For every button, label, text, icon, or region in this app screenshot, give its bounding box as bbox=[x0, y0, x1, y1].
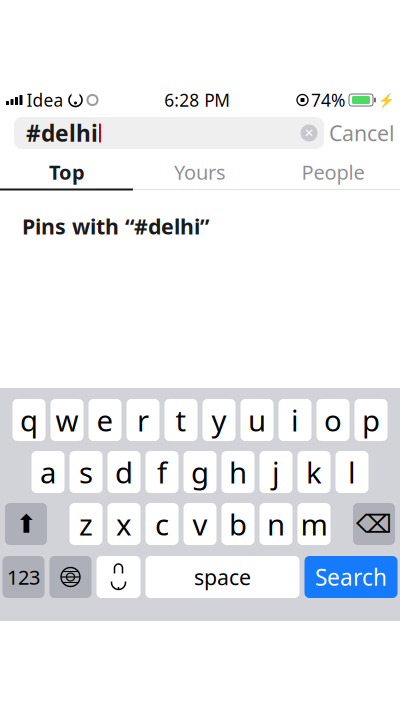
button[interactable]: Search bbox=[304, 556, 397, 598]
button[interactable]: space bbox=[145, 556, 299, 598]
button[interactable]: w bbox=[50, 399, 83, 441]
button[interactable]: t bbox=[164, 399, 197, 441]
staticText: ✕ bbox=[304, 126, 314, 140]
staticText: Search bbox=[315, 562, 387, 592]
staticText: d bbox=[115, 452, 133, 491]
button[interactable]: q bbox=[12, 399, 45, 441]
button[interactable]: Yours bbox=[133, 155, 266, 188]
staticText: ⌫ bbox=[356, 510, 392, 538]
staticText: z bbox=[79, 504, 93, 543]
staticText: j bbox=[272, 452, 280, 491]
staticText: v bbox=[192, 504, 207, 543]
staticText: p bbox=[362, 400, 380, 439]
button[interactable]: k bbox=[297, 451, 330, 493]
staticText: i bbox=[291, 400, 299, 439]
staticText: l bbox=[348, 452, 356, 491]
staticText: k bbox=[306, 452, 322, 491]
staticText: e bbox=[96, 400, 113, 439]
button[interactable]: Dictate bbox=[96, 556, 140, 598]
button[interactable]: Clear text bbox=[294, 117, 324, 149]
button[interactable]: n bbox=[259, 503, 292, 545]
button[interactable]: People bbox=[266, 155, 399, 188]
button[interactable]: Shift bbox=[5, 503, 47, 545]
staticText: n bbox=[267, 504, 285, 543]
button[interactable]: f bbox=[145, 451, 178, 493]
staticText: Top bbox=[49, 159, 85, 185]
button[interactable]: e bbox=[88, 399, 121, 441]
staticText: ⬆ bbox=[15, 510, 36, 538]
staticText: t bbox=[175, 400, 186, 439]
staticText: Pins with “#delhi” bbox=[22, 212, 209, 240]
button[interactable]: u bbox=[240, 399, 273, 441]
staticText: b bbox=[229, 504, 247, 543]
staticText: 123 bbox=[7, 564, 40, 590]
staticText: 6:28 PM bbox=[164, 88, 230, 111]
staticText: Cancel bbox=[329, 119, 395, 147]
button[interactable]: b bbox=[221, 503, 254, 545]
staticText: s bbox=[79, 452, 93, 491]
button[interactable]: g bbox=[183, 451, 216, 493]
button[interactable]: c bbox=[145, 503, 178, 545]
button[interactable]: y bbox=[202, 399, 235, 441]
button[interactable]: j bbox=[259, 451, 292, 493]
button[interactable]: Cancel bbox=[324, 116, 400, 150]
staticText: f bbox=[157, 452, 167, 491]
button[interactable]: x bbox=[107, 503, 140, 545]
staticText: x bbox=[116, 504, 132, 543]
button[interactable]: r bbox=[126, 399, 159, 441]
button[interactable]: Delete bbox=[353, 503, 395, 545]
staticText: #delhi bbox=[26, 118, 98, 148]
staticText: c bbox=[155, 504, 169, 543]
staticText: a bbox=[40, 452, 56, 491]
staticText: r bbox=[137, 400, 149, 439]
staticText: w bbox=[55, 400, 78, 439]
staticText: o bbox=[324, 400, 342, 439]
staticText: g bbox=[191, 452, 209, 491]
button[interactable]: z bbox=[69, 503, 102, 545]
staticText: space bbox=[194, 563, 251, 591]
staticText: m bbox=[300, 504, 327, 543]
staticText: People bbox=[301, 159, 364, 185]
staticText: h bbox=[229, 452, 247, 491]
staticText: Idea bbox=[26, 88, 63, 111]
button[interactable]: Next keyboard bbox=[49, 556, 91, 598]
button[interactable]: v bbox=[183, 503, 216, 545]
button[interactable]: 123 bbox=[2, 556, 44, 598]
button[interactable]: d bbox=[107, 451, 140, 493]
button[interactable]: p bbox=[354, 399, 387, 441]
button[interactable]: l bbox=[335, 451, 368, 493]
staticText: q bbox=[20, 400, 38, 439]
staticText: ⚡ bbox=[378, 92, 395, 108]
staticText: 74% bbox=[311, 88, 345, 111]
staticText: Yours bbox=[174, 159, 226, 185]
button[interactable]: Top bbox=[0, 155, 133, 188]
staticText: y bbox=[211, 400, 226, 439]
button[interactable]: i bbox=[278, 399, 311, 441]
button[interactable]: h bbox=[221, 451, 254, 493]
button[interactable]: m bbox=[297, 503, 330, 545]
button[interactable]: s bbox=[69, 451, 102, 493]
staticText: u bbox=[248, 400, 266, 439]
button[interactable]: a bbox=[31, 451, 64, 493]
button[interactable]: o bbox=[316, 399, 349, 441]
